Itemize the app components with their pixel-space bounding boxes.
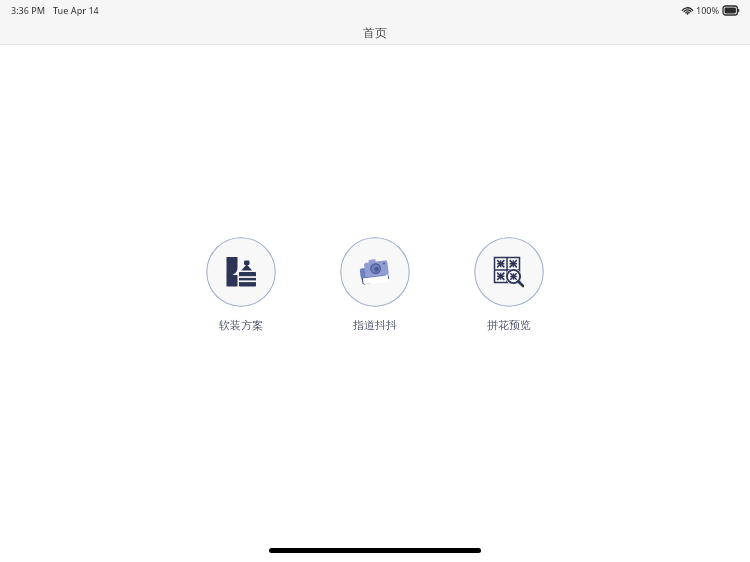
staticText: 3:36 PM: [11, 4, 45, 16]
staticText: Tue Apr 14: [53, 4, 99, 16]
staticText: 100%: [696, 4, 720, 16]
staticText: 指道抖抖: [353, 318, 397, 332]
button[interactable]: 软装方案: [206, 237, 276, 332]
staticText: 软装方案: [219, 318, 263, 332]
staticText: 拼花预览: [487, 318, 531, 332]
staticText: 首页: [363, 25, 387, 40]
button[interactable]: 指道抖抖: [340, 237, 410, 332]
button[interactable]: 拼花预览: [474, 237, 544, 332]
